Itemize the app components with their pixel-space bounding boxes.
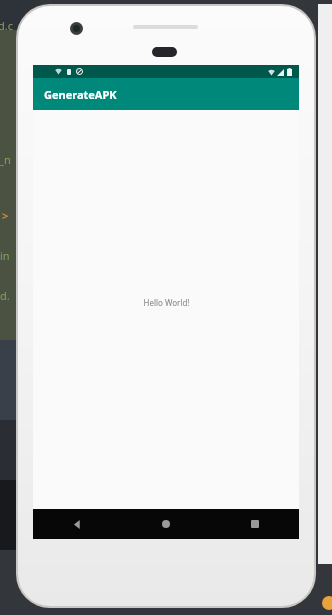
staticText: d.c [0, 18, 13, 33]
button[interactable]: GenerateAPK [33, 78, 299, 110]
staticText: in [0, 248, 10, 263]
staticText: > [2, 208, 9, 223]
staticText: GenerateAPK [44, 87, 117, 102]
button[interactable]: Back [33, 509, 121, 539]
button[interactable]: Home [121, 509, 210, 539]
button[interactable]: Recent apps [210, 509, 299, 539]
staticText: d. [0, 288, 10, 303]
staticText: _n [0, 152, 11, 167]
staticText: Hello World! [143, 297, 190, 308]
